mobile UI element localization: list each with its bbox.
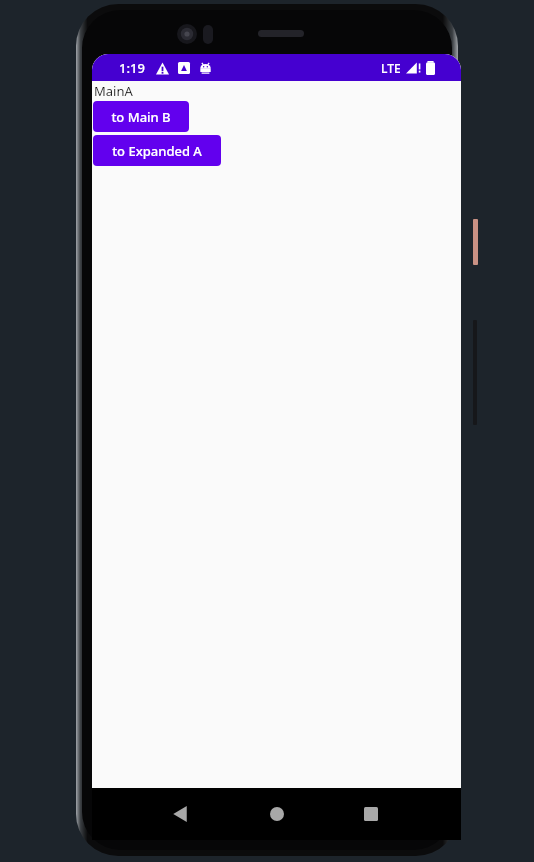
staticText: MainA (94, 82, 133, 100)
button[interactable]: Home (257, 794, 297, 834)
button[interactable]: to Main B (93, 101, 189, 132)
button[interactable]: Back (160, 794, 200, 834)
staticText: to Expanded A (112, 142, 202, 160)
button[interactable]: to Expanded A (93, 135, 221, 166)
staticText: 1:19 (119, 59, 145, 77)
staticText: LTE (381, 60, 401, 76)
button[interactable]: Recent apps (351, 794, 391, 834)
staticText: to Main B (111, 108, 171, 126)
